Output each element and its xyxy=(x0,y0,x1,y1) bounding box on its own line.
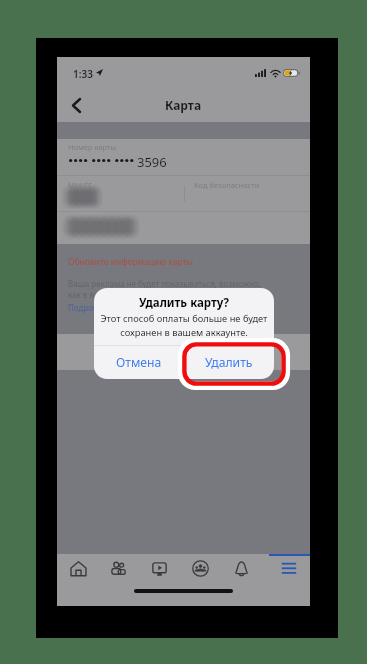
staticText: Удалить xyxy=(205,354,253,371)
button[interactable]: Notifications xyxy=(221,553,261,583)
button[interactable]: Friends xyxy=(98,553,138,583)
button[interactable]: Удалить xyxy=(184,346,274,379)
staticText: Код безопасности xyxy=(194,180,260,190)
button[interactable]: Back xyxy=(63,92,89,118)
button[interactable]: Watch xyxy=(139,553,179,583)
staticText: Удалить карту? xyxy=(94,295,274,311)
staticText: Этот способ оплаты больше не будет сохра… xyxy=(94,312,274,339)
staticText: Карта xyxy=(165,97,202,113)
button[interactable]: Подробнее xyxy=(68,302,112,313)
staticText: Отмена xyxy=(116,354,162,371)
button[interactable]: Groups xyxy=(180,553,220,583)
staticText: 1:33 xyxy=(73,67,93,81)
staticText: Обновите информацию карты xyxy=(68,256,193,268)
button[interactable]: Home xyxy=(58,553,98,583)
button[interactable]: Отмена xyxy=(94,346,183,379)
button[interactable]: Menu xyxy=(269,553,309,583)
staticText: 3596 xyxy=(137,153,167,171)
staticText: ММ/ГГ xyxy=(68,180,93,190)
staticText: Ваша реклама не будет показываться, возм… xyxy=(68,278,261,301)
staticText: Номер карты xyxy=(68,142,117,152)
